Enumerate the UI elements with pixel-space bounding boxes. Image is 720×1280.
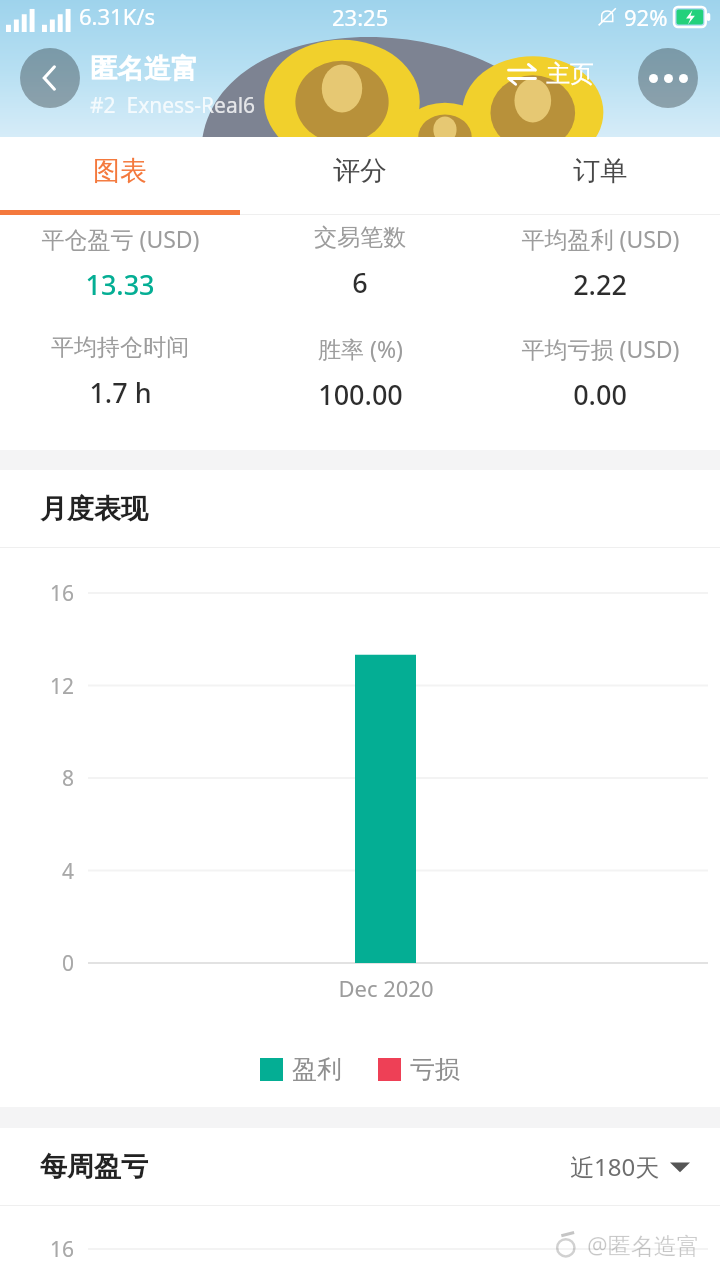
staticText: 23:25 xyxy=(332,2,389,32)
staticText: 图表 xyxy=(93,154,147,188)
staticText: 0.00 xyxy=(573,376,627,413)
staticText: 交易笔数 xyxy=(314,223,406,252)
button[interactable]: 近180天 xyxy=(570,1150,690,1183)
button[interactable]: 亏损 xyxy=(378,1054,460,1085)
button[interactable]: 图表 xyxy=(0,137,240,215)
staticText: 订单 xyxy=(573,154,627,188)
staticText: #2 Exness-Real6 xyxy=(90,91,256,120)
staticText: 100.00 xyxy=(318,376,403,413)
button[interactable]: 盈利 xyxy=(260,1054,342,1085)
staticText: 评分 xyxy=(333,154,387,188)
button[interactable]: 订单 xyxy=(480,137,720,215)
staticText: 平均亏损 (USD) xyxy=(521,333,680,364)
staticText: @匿名造富 xyxy=(587,1229,700,1260)
button[interactable]: More options xyxy=(638,48,698,108)
staticText: 近180天 xyxy=(570,1150,660,1183)
button[interactable]: 主页 xyxy=(506,58,594,90)
staticText: 2.22 xyxy=(573,266,627,303)
staticText: 0 xyxy=(0,949,74,978)
staticText: 16 xyxy=(0,1235,74,1264)
staticText: 盈利 xyxy=(292,1054,342,1085)
staticText: 每周盈亏 xyxy=(40,1150,148,1184)
staticText: 8 xyxy=(0,764,74,793)
staticText: 12 xyxy=(0,672,74,701)
staticText: 平均盈利 (USD) xyxy=(521,223,680,254)
staticText: 主页 xyxy=(546,59,594,89)
staticText: 6 xyxy=(352,264,368,301)
staticText: 16 xyxy=(0,579,74,608)
staticText: 92% xyxy=(624,2,668,32)
staticText: 匿名造富 xyxy=(90,52,198,86)
staticText: 1.7 h xyxy=(89,374,152,411)
staticText: 月度表现 xyxy=(40,492,148,526)
staticText: 胜率 (%) xyxy=(318,333,403,364)
staticText: 平均持仓时间 xyxy=(51,333,189,362)
staticText: 亏损 xyxy=(410,1054,460,1085)
staticText: 平仓盈亏 (USD) xyxy=(41,223,200,254)
staticText: 4 xyxy=(0,857,74,886)
button[interactable]: 评分 xyxy=(240,137,480,215)
staticText: 13.33 xyxy=(85,266,155,303)
staticText: Dec 2020 xyxy=(296,973,476,1003)
button[interactable]: Back xyxy=(20,48,80,108)
staticText: 6.31K/s xyxy=(79,1,155,31)
